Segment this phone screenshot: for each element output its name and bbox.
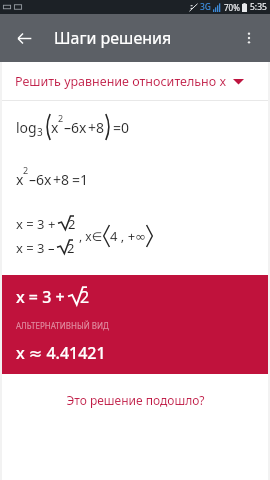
staticText: x xyxy=(16,170,24,189)
staticText: 2 xyxy=(67,239,75,257)
button[interactable]: Назад xyxy=(6,20,42,56)
staticText: –6x xyxy=(64,118,87,137)
staticText: x = 3 + xyxy=(16,215,56,233)
staticText: 2 xyxy=(68,215,76,233)
staticText: 4 , +∞ xyxy=(110,227,146,245)
staticText: =1 xyxy=(72,170,89,189)
staticText: x xyxy=(51,118,59,137)
staticText: –6x xyxy=(29,170,52,189)
staticText: 3G xyxy=(200,1,212,13)
staticText: 5:35 xyxy=(250,1,267,13)
staticText: +8 xyxy=(53,170,70,189)
staticText: x = 3 – xyxy=(16,239,55,257)
staticText: 70% xyxy=(224,2,240,13)
staticText: 2 xyxy=(23,164,29,176)
staticText: Это решение подошло? xyxy=(66,392,205,408)
staticText: АЛЬТЕРНАТИВНЫЙ ВИД xyxy=(16,320,109,331)
staticText: +8 xyxy=(88,118,105,137)
staticText: 3 xyxy=(37,125,43,139)
button[interactable]: x = 3 + xyxy=(2,275,268,374)
button[interactable]: Это решение подошло? xyxy=(2,374,268,426)
staticText: Шаги решения xyxy=(54,27,172,49)
staticText: 2 xyxy=(80,286,90,308)
staticText: 2 xyxy=(58,112,64,124)
staticText: log xyxy=(16,118,37,137)
staticText: , x∈ xyxy=(79,228,103,244)
staticText: Решить уравнение относительно x xyxy=(15,73,227,90)
staticText: x ≈ 4.41421 xyxy=(16,342,106,364)
staticText: =0 xyxy=(113,118,130,137)
button[interactable]: Ещё xyxy=(232,21,266,55)
staticText: x = 3 + xyxy=(16,286,65,308)
button[interactable]: Решить уравнение относительно x xyxy=(2,62,268,100)
